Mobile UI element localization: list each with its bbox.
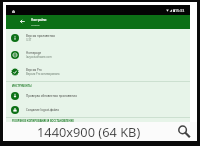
- button[interactable]: Версия приложения: [6, 29, 190, 46]
- staticText: Версия Pro активирована: [26, 72, 60, 76]
- staticText: Версия приложения: [26, 34, 56, 38]
- button[interactable]: Версия Pro: [6, 63, 190, 80]
- staticText: 3.37: [26, 38, 32, 42]
- staticText: Версия Pro: [26, 68, 42, 72]
- staticText: ИНСТРУМЕНТЫ: [12, 84, 32, 87]
- staticText: lazycatsoftware.com: [26, 55, 52, 59]
- button[interactable]: Создание logcat-файла: [6, 103, 190, 117]
- staticText: Настройки: [31, 18, 47, 22]
- staticText: Создание logcat-файла: [26, 108, 59, 112]
- button[interactable]: Homepage: [6, 46, 190, 63]
- staticText: Сервис: [31, 23, 40, 26]
- staticText: РЕЗЕРВНОЕ КОПИРОВАНИЕ И ВОССТАНОВЛЕНИЕ: [12, 119, 74, 122]
- staticText: 1440x900 (64 KB): [37, 123, 141, 140]
- staticText: 15:33: [175, 8, 185, 13]
- button[interactable]: Zoom in: [174, 122, 197, 141]
- button[interactable]: Back: [16, 15, 29, 29]
- staticText: Homepage: [26, 51, 42, 55]
- staticText: Проверка обновления приложения: [26, 94, 77, 98]
- button[interactable]: Проверка обновления приложения: [6, 89, 190, 103]
